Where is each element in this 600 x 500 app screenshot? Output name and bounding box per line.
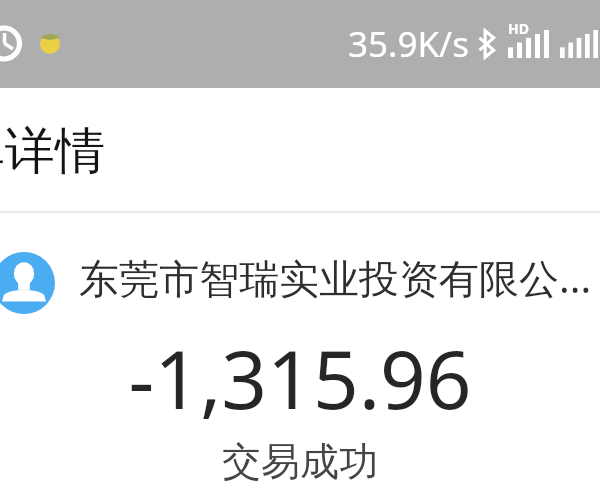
staticText: -1,315.96 [0, 323, 600, 432]
staticText: HD [508, 19, 529, 38]
other: Alarm [0, 0, 600, 88]
staticText: 东莞市智瑞实业投资有限公... [79, 250, 592, 305]
button[interactable]: 东莞市智瑞实业投资有限公... [0, 236, 600, 330]
other: Bluetooth [478, 30, 495, 58]
staticText: 35.9K/s [348, 20, 469, 68]
button[interactable]: 账单详情 [0, 88, 600, 211]
other: Signal strength [508, 30, 549, 58]
staticText: 交易成功 [0, 437, 600, 486]
staticText: 账单详情 [0, 120, 105, 183]
other: Signal strength [560, 30, 598, 58]
